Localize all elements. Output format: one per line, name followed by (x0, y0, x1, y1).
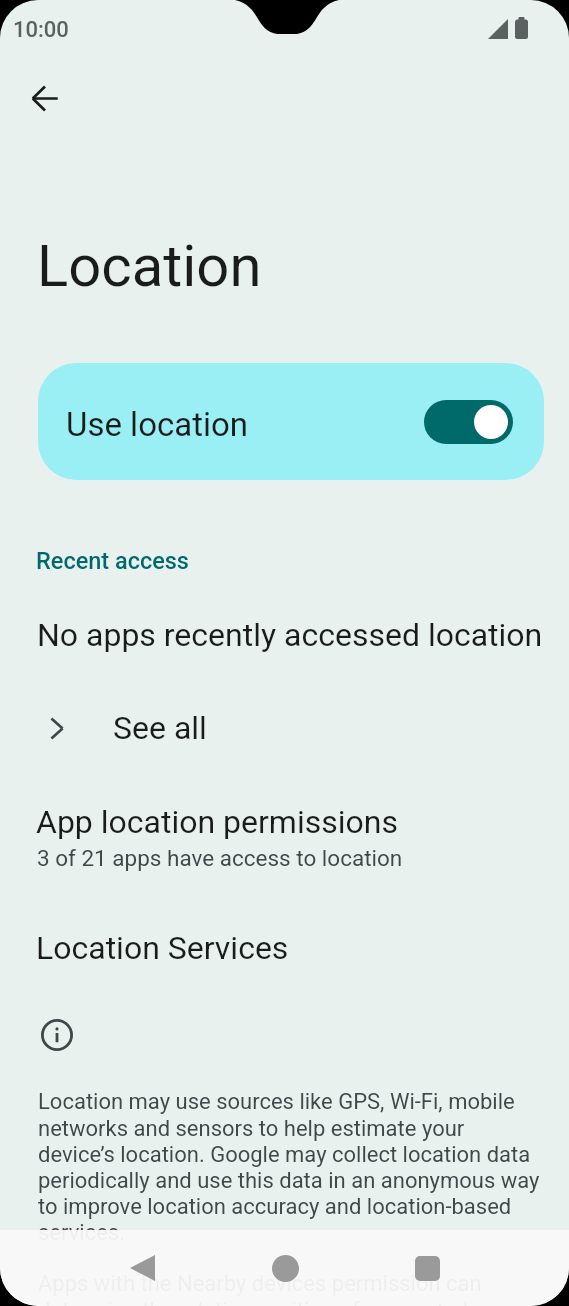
button[interactable]: See all (0, 699, 569, 757)
staticText: Recent access (36, 547, 189, 575)
button[interactable]: App location permissions (0, 803, 569, 867)
staticText: Location (37, 232, 262, 300)
staticText: No apps recently accessed location (37, 616, 543, 654)
button[interactable]: Home (256, 1248, 314, 1288)
button[interactable]: Recent apps (398, 1248, 456, 1288)
staticText: App location permissions (36, 803, 398, 841)
button[interactable]: Back (113, 1248, 171, 1288)
staticText: Location may use sources like GPS, Wi-Fi… (38, 1089, 541, 1245)
button[interactable]: Navigate up (16, 70, 73, 127)
staticText: Location Services (36, 929, 289, 967)
staticText: 10:00 (13, 17, 69, 43)
staticText: Apps with the Nearby devices permission … (38, 1271, 541, 1306)
staticText: Use location (66, 405, 249, 444)
button[interactable]: Use location (38, 363, 544, 480)
staticText: See all (113, 709, 207, 747)
staticText: 3 of 21 apps have access to location (37, 845, 403, 871)
